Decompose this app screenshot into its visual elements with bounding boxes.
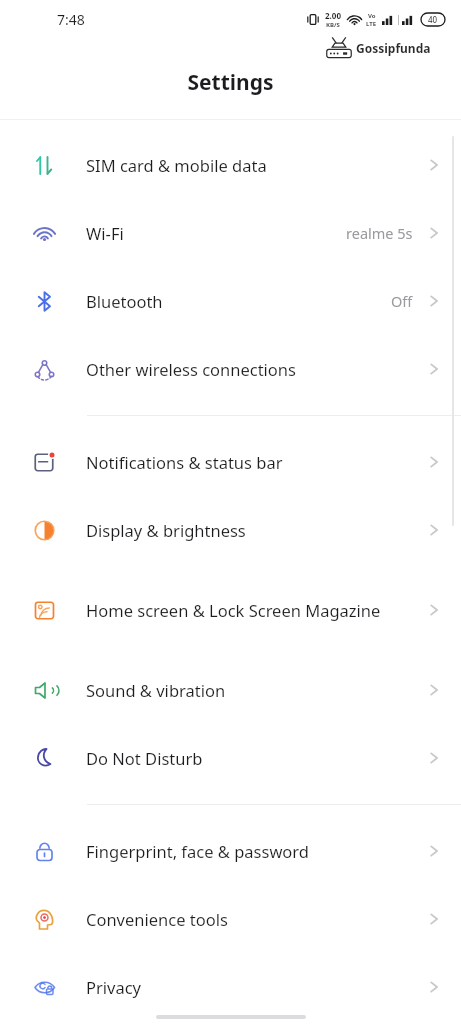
staticText: Do Not Disturb [86,747,203,769]
button[interactable]: Bluetooth [0,267,461,335]
button[interactable]: Convenience tools [0,885,461,953]
staticText: Other wireless connections [86,358,296,380]
staticText: 40 [428,14,438,25]
staticText: 7:48 [57,10,85,29]
button[interactable]: Privacy [0,953,461,1021]
staticText: Convenience tools [86,908,228,930]
button[interactable]: Notifications & status bar [0,428,461,496]
button[interactable]: Other wireless connections [0,335,461,403]
staticText: KB/S [326,21,340,29]
button[interactable]: Do Not Disturb [0,724,461,792]
staticText: Privacy [86,976,142,998]
staticText: Display & brightness [86,519,246,541]
button[interactable]: Wi-Fi [0,199,461,267]
button[interactable]: Display & brightness [0,496,461,564]
button[interactable]: Sound & vibration [0,656,461,724]
staticText: Fingerprint, face & password [86,840,309,862]
staticText: Bluetooth [86,290,163,312]
staticText: 2.00 [325,10,341,21]
staticText: Settings [187,68,274,97]
staticText: Wi-Fi [86,222,124,244]
staticText: SIM card & mobile data [86,154,267,176]
staticText: Off [391,291,413,311]
button[interactable]: Home screen & Lock Screen Magazine [0,564,461,656]
staticText: realme 5s [346,223,413,243]
staticText: Vo [368,12,376,20]
staticText: Sound & vibration [86,679,226,701]
button[interactable]: Fingerprint, face & password [0,817,461,885]
staticText: Notifications & status bar [86,451,283,473]
button[interactable]: SIM card & mobile data [0,131,461,199]
staticText: Home screen & Lock Screen Magazine [86,599,381,621]
staticText: LTE [366,20,377,28]
staticText: Gossipfunda [356,40,431,56]
